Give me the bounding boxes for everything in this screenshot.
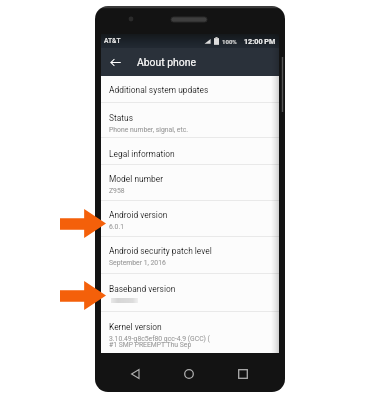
button[interactable]: Additional system updates bbox=[101, 76, 279, 103]
staticText: Additional system updates bbox=[109, 85, 209, 95]
staticText: AT&T bbox=[104, 37, 121, 45]
button[interactable]: Kernel version bbox=[101, 312, 279, 353]
staticText: Legal information bbox=[109, 149, 175, 159]
button[interactable]: Baseband version bbox=[101, 274, 279, 312]
staticText: 100% bbox=[222, 38, 237, 45]
button[interactable]: Android version bbox=[101, 201, 279, 237]
staticText: Status bbox=[109, 113, 133, 123]
button[interactable]: Android security patch level bbox=[101, 237, 279, 274]
staticText: 12:00 PM bbox=[244, 37, 276, 45]
staticText: Baseband version bbox=[109, 284, 176, 294]
staticText: September 1, 2016 bbox=[109, 259, 166, 267]
staticText: 6.0.1 bbox=[109, 223, 125, 231]
staticText: Phone number, signal, etc. bbox=[109, 126, 189, 134]
staticText: Z958 bbox=[109, 187, 125, 195]
staticText: 3.10.49-g8c5ef80 gcc-4.9 (GCC) ( bbox=[109, 335, 210, 343]
button[interactable]: Model number bbox=[101, 165, 279, 201]
staticText: Android version bbox=[109, 210, 168, 220]
staticText: #1 SMP PREEMPT Thu Sep bbox=[109, 341, 192, 349]
staticText: Model number bbox=[109, 174, 164, 184]
button[interactable]: Legal information bbox=[101, 138, 279, 165]
button[interactable]: Status bbox=[101, 103, 279, 138]
button[interactable]: Navigate up bbox=[107, 54, 123, 70]
button[interactable]: Recent apps bbox=[231, 362, 255, 386]
staticText: Kernel version bbox=[109, 322, 162, 332]
staticText: Android security patch level bbox=[109, 246, 212, 256]
button[interactable]: Back bbox=[124, 362, 148, 386]
staticText: About phone bbox=[137, 56, 196, 68]
button[interactable]: Home bbox=[177, 362, 201, 386]
